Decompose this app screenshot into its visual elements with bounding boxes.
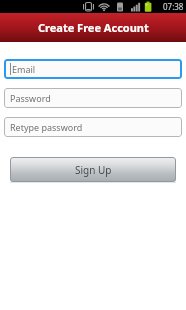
button[interactable]: Password <box>4 88 182 108</box>
staticText: Password <box>10 92 51 104</box>
staticText: Create Free Account <box>38 20 149 35</box>
staticText: Retype password <box>10 121 83 133</box>
button[interactable]: Sign Up <box>10 157 176 182</box>
staticText: Email <box>12 63 36 75</box>
staticText: 07:38 <box>163 1 184 12</box>
button[interactable]: Retype password <box>4 117 182 137</box>
button[interactable]: Email <box>4 59 182 79</box>
staticText: Sign Up <box>75 163 112 177</box>
